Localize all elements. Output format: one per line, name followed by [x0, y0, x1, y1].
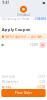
staticText: FLAT50 applied — you saved ₹50 [5, 35, 44, 38]
staticText: Checkout [17, 13, 30, 17]
staticText: 9:41 [2, 1, 9, 4]
button[interactable]: Delivering to Home · 221B Baker Street, … [0, 17, 47, 21]
staticText: Item total [2, 75, 15, 78]
staticText: ₹228 [37, 85, 45, 89]
staticText: Delivery fee [2, 80, 19, 84]
staticText: ₹249 [37, 75, 45, 78]
staticText: To Pay [2, 85, 11, 89]
staticText: CHANGE [34, 17, 45, 21]
staticText: Apply Coupon [2, 27, 31, 32]
staticText: Place Order [15, 91, 32, 95]
button[interactable]: FLAT50 applied — you saved ₹50 [0, 33, 47, 40]
staticText: Delivering to Home · 221B Baker Street, … [1, 17, 34, 21]
button[interactable]: Place Order [1, 89, 46, 97]
staticText: ₹249 [30, 43, 38, 47]
staticText: ▮▮ [42, 1, 44, 4]
button[interactable]: Remove item [40, 42, 46, 48]
staticText: ₹29 [39, 80, 45, 84]
